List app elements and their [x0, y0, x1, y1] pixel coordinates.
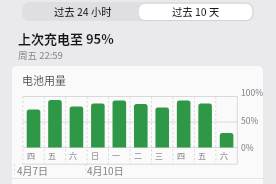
staticText: 4月7日 — [17, 163, 49, 177]
staticText: 五 — [198, 150, 206, 162]
staticText: 六 — [69, 150, 77, 162]
staticText: 日 — [91, 150, 99, 162]
staticText: 上次充电至 95% — [18, 29, 114, 48]
staticText: 二 — [134, 150, 142, 162]
staticText: 0% — [241, 141, 254, 153]
staticText: 一 — [112, 150, 120, 162]
staticText: 三 — [155, 150, 163, 162]
staticText: 电池用量 — [22, 72, 66, 88]
staticText: 四 — [27, 150, 35, 162]
staticText: 周五 22:59 — [18, 48, 63, 62]
button[interactable] — [139, 4, 252, 20]
staticText: 过去 24 小时 — [54, 4, 112, 19]
staticText: 50% — [241, 114, 259, 126]
staticText: 过去 10 天 — [172, 4, 220, 19]
staticText: 四 — [177, 150, 185, 162]
staticText: 100% — [241, 86, 263, 98]
button[interactable] — [22, 2, 138, 21]
staticText: 五 — [48, 150, 56, 162]
staticText: 六 — [220, 150, 228, 162]
staticText: 4月10日 — [87, 163, 124, 177]
